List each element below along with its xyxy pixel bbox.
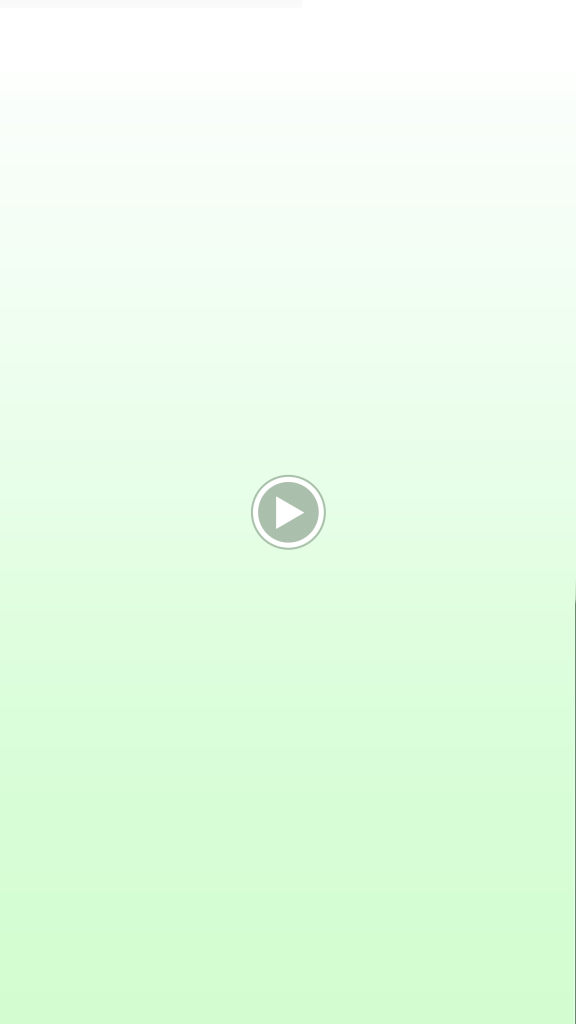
- button[interactable]: Play: [248, 472, 328, 552]
